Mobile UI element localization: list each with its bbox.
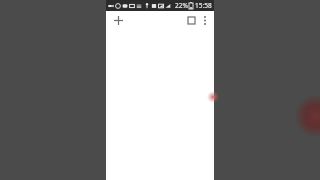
- button[interactable]: More options: [198, 13, 212, 27]
- button[interactable]: Select: [184, 13, 198, 27]
- staticText: 15:58: [195, 1, 212, 10]
- staticText: 22%: [175, 1, 188, 10]
- button[interactable]: Add: [111, 13, 125, 27]
